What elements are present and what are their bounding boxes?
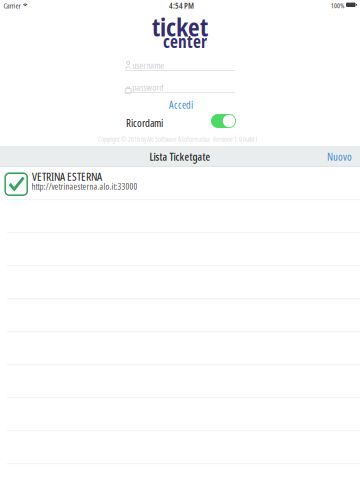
button[interactable]: VETRINA ESTERNA (0, 167, 360, 199)
staticText: password (132, 81, 163, 94)
staticText: Lista Ticketgate (149, 149, 210, 164)
button[interactable]: Ricordami (211, 114, 236, 128)
staticText: center (163, 29, 207, 53)
staticText: Carrier (3, 1, 20, 11)
staticText: Accedi (169, 98, 193, 112)
button[interactable]: Nuovo (323, 145, 356, 168)
staticText: username (132, 59, 164, 72)
staticText: Ricordami (126, 115, 163, 130)
staticText: ticket (152, 9, 208, 44)
staticText: 4:54 PM (169, 0, 194, 11)
staticText: VETRINA ESTERNA (32, 169, 102, 184)
staticText: Copyright © 2016 by Alo Software & Lofor… (98, 134, 258, 144)
staticText: http://vetrinaesterna.alo.it:33000 (31, 181, 137, 192)
button[interactable]: Accedi (166, 95, 196, 115)
staticText: 100% (331, 1, 344, 10)
staticText: Nuovo (327, 149, 352, 164)
